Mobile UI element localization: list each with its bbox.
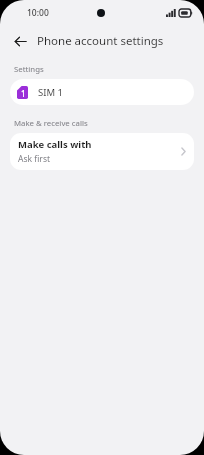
button[interactable]: 1 — [10, 79, 194, 105]
staticText: Make & receive calls — [14, 118, 88, 129]
staticText: Ask first — [18, 153, 51, 165]
staticText: Make calls with — [18, 138, 92, 151]
staticText: Phone account settings — [37, 33, 164, 49]
staticText: 10:00 — [27, 7, 49, 19]
button[interactable]: Back — [7, 28, 33, 54]
staticText: SIM 1 — [38, 86, 63, 99]
button[interactable]: Make calls with — [10, 133, 194, 170]
staticText: Settings — [14, 64, 44, 75]
staticText: 1 — [21, 88, 26, 99]
